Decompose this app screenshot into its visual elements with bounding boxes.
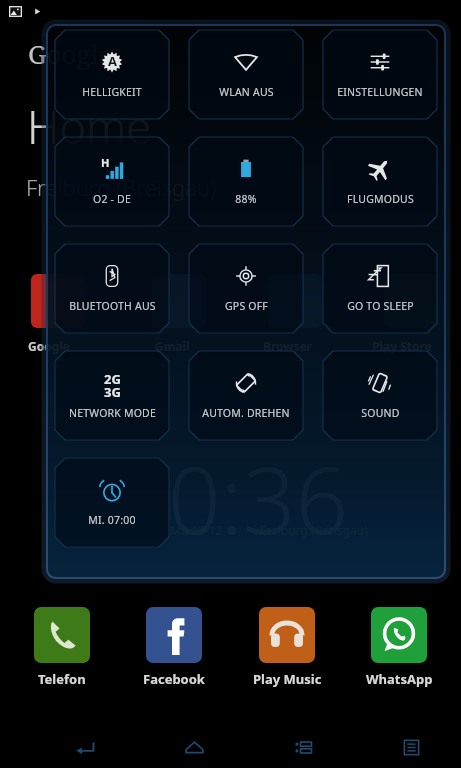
staticText: BLUETOOTH AUS: [69, 299, 156, 313]
button[interactable]: GO TO SLEEP: [323, 244, 437, 333]
button[interactable]: 88%: [189, 137, 303, 226]
button[interactable]: MI. 07:00: [55, 458, 169, 547]
staticText: 2G 3G: [104, 370, 121, 401]
button[interactable]: WhatsApp: [349, 607, 449, 688]
staticText: NETWORK MODE: [69, 406, 156, 420]
button[interactable]: FLUGMODUS: [323, 137, 437, 226]
staticText: EINSTELLUNGEN: [337, 85, 423, 99]
button[interactable]: Telefon: [12, 607, 112, 688]
button[interactable]: Recent apps: [276, 726, 330, 768]
staticText: 88%: [235, 192, 257, 206]
staticText: O2 - DE: [93, 192, 131, 206]
staticText: FLUGMODUS: [347, 192, 414, 206]
button[interactable]: A: [55, 30, 169, 119]
staticText: WLAN AUS: [219, 85, 274, 99]
staticText: A: [108, 52, 117, 70]
staticText: Facebook: [143, 670, 205, 688]
button[interactable]: Play Music: [237, 607, 337, 688]
button[interactable]: GPS OFF: [189, 244, 303, 333]
staticText: Google: [28, 36, 113, 71]
staticText: SOUND: [361, 406, 400, 420]
staticText: MI. 07:00: [88, 513, 136, 527]
button[interactable]: EINSTELLUNGEN: [323, 30, 437, 119]
button[interactable]: SOUND: [323, 351, 437, 440]
staticText: Home: [27, 96, 152, 157]
staticText: H: [101, 155, 110, 170]
button[interactable]: Home: [167, 726, 221, 768]
button[interactable]: Facebook: [124, 607, 224, 688]
staticText: Play Music: [253, 670, 322, 688]
staticText: GO TO SLEEP: [347, 299, 414, 313]
button[interactable]: Menu: [384, 726, 438, 768]
button[interactable]: AUTOM. DREHEN: [189, 351, 303, 440]
staticText: Browser: [263, 338, 313, 354]
staticText: 0:36: [168, 436, 349, 561]
staticText: Gmail: [155, 338, 190, 354]
staticText: Google: [28, 338, 71, 354]
staticText: Play Store: [372, 338, 432, 354]
staticText: WhatsApp: [366, 670, 433, 688]
button[interactable]: WLAN AUS: [189, 30, 303, 119]
staticText: Telefon: [38, 670, 86, 688]
button[interactable]: Back: [58, 726, 112, 768]
staticText: GPS OFF: [225, 299, 268, 313]
button[interactable]: H: [55, 137, 169, 226]
staticText: AUTOM. DREHEN: [202, 406, 290, 420]
button[interactable]: BLUETOOTH AUS: [55, 244, 169, 333]
button[interactable]: 2G 3G: [55, 351, 169, 440]
staticText: HELLIGKEIT: [82, 85, 142, 99]
staticText: Freiburg (Breisgau): [26, 172, 217, 202]
staticText: MI. 12-12 Freiburg (Breisgau): [170, 522, 368, 538]
